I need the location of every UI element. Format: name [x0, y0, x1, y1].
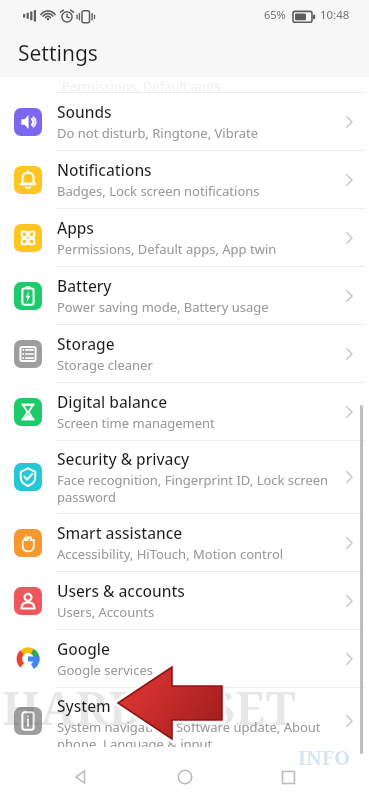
staticText: INFO [298, 744, 350, 771]
staticText: Google [57, 638, 110, 659]
button[interactable]: Google [0, 630, 369, 687]
button[interactable]: Notifications [0, 151, 369, 208]
button[interactable]: Battery [0, 267, 369, 324]
staticText: Users, Accounts [57, 603, 155, 621]
staticText: Battery [57, 275, 112, 296]
staticText: Storage cleaner [57, 356, 153, 374]
button[interactable]: Sounds [0, 93, 369, 150]
button[interactable]: Home [162, 754, 208, 800]
staticText: Screen time management [57, 414, 215, 432]
staticText: Users & accounts [57, 580, 185, 601]
staticText: System [57, 695, 111, 716]
staticText: Power saving mode, Battery usage [57, 298, 269, 316]
staticText: Storage [57, 333, 115, 354]
staticText: Digital balance [57, 391, 168, 412]
button[interactable]: Recent apps [265, 754, 311, 800]
button[interactable]: Security & privacy [0, 441, 369, 513]
staticText: 65% [264, 7, 286, 22]
staticText: Security & privacy [57, 448, 190, 469]
staticText: Smart assistance [57, 522, 183, 543]
staticText: Notifications [57, 159, 152, 180]
staticText: 10:48 [320, 7, 350, 23]
staticText: System navigation, Software update, Abou… [57, 718, 335, 747]
staticText: HARDRESET [2, 676, 297, 739]
staticText: Sounds [57, 101, 112, 122]
button[interactable]: Apps [0, 209, 369, 266]
staticText: Apps [57, 217, 94, 238]
staticText: Accessibility, HiTouch, Motion control [57, 545, 284, 563]
staticText: Permissions, Default apps [62, 77, 221, 92]
button[interactable]: Smart assistance [0, 514, 369, 571]
button[interactable]: Users & accounts [0, 572, 369, 629]
staticText: Face recognition, Fingerprint ID, Lock s… [57, 471, 335, 506]
button[interactable]: Back [58, 754, 104, 800]
staticText: Do not disturb, Ringtone, Vibrate [57, 124, 259, 142]
staticText: Google services [57, 661, 153, 679]
button[interactable]: System [0, 688, 369, 754]
staticText: Settings [18, 39, 98, 68]
staticText: Badges, Lock screen notifications [57, 182, 260, 200]
staticText: Permissions, Default apps, App twin [57, 240, 277, 258]
button[interactable]: Digital balance [0, 383, 369, 440]
button[interactable]: Storage [0, 325, 369, 382]
